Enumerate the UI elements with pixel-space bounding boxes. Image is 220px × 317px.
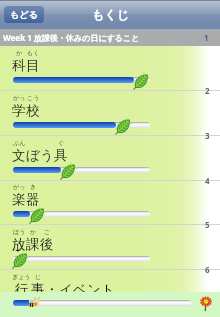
staticText: う [40, 147, 54, 164]
staticText: 課 [26, 236, 40, 253]
staticText: もくじ [92, 7, 129, 22]
staticText: か [30, 228, 37, 236]
staticText: 行 [15, 281, 29, 292]
staticText: ぶん [13, 139, 26, 147]
staticText: 校 [26, 102, 40, 119]
staticText: き [30, 183, 37, 191]
staticText: 6 [205, 264, 210, 275]
staticText: イ [59, 281, 73, 292]
staticText: 4 [205, 175, 210, 186]
button[interactable]: もどる [4, 6, 44, 23]
staticText: ・ [45, 281, 59, 292]
staticText: ぎょう [12, 273, 31, 281]
staticText: ト [101, 281, 115, 292]
staticText: ご [44, 228, 51, 236]
button[interactable]: 科 [0, 46, 220, 91]
staticText: もどる [10, 9, 38, 20]
staticText: 事 [31, 281, 45, 292]
staticText: 目 [26, 57, 40, 74]
staticText: 学 [12, 102, 26, 119]
staticText: Week 1 放課後・休みの日にすること [3, 32, 140, 43]
staticText: ぼ [26, 147, 40, 164]
staticText: 3 [205, 130, 210, 141]
other: Progress marker [27, 296, 42, 311]
button[interactable]: 学 [0, 91, 220, 136]
staticText: 後 [40, 236, 54, 253]
staticText: こう [27, 94, 40, 102]
button[interactable]: 行 [0, 270, 220, 292]
staticText: 5 [205, 219, 210, 230]
staticText: がっ [13, 183, 26, 191]
staticText: じ [35, 273, 42, 281]
button[interactable]: 文 [0, 136, 220, 181]
staticText: 科 [12, 57, 26, 74]
staticText: 文 [12, 147, 26, 164]
button[interactable]: 放 [0, 225, 220, 270]
staticText: 器 [26, 191, 40, 208]
staticText: もく [27, 49, 40, 57]
other: Goal [197, 294, 215, 312]
staticText: がっ [13, 94, 26, 102]
staticText: 楽 [12, 191, 26, 208]
staticText: 1 [204, 32, 209, 43]
staticText: ぐ [58, 139, 65, 147]
staticText: か [16, 49, 23, 57]
staticText: 2 [205, 85, 210, 96]
staticText: 放 [12, 236, 26, 253]
staticText: 具 [54, 147, 68, 164]
button[interactable]: 楽 [0, 180, 220, 225]
staticText: ほう [13, 228, 26, 236]
button[interactable]: Progress marker [0, 292, 220, 317]
staticText: ン [87, 281, 101, 292]
staticText: ベ [73, 281, 87, 292]
